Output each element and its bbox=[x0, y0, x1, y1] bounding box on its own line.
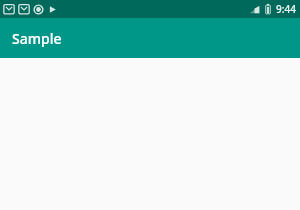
other: Recording notification bbox=[33, 4, 44, 15]
staticText: Sample bbox=[12, 29, 62, 48]
other: Cellular signal bbox=[249, 4, 260, 15]
button[interactable]: Sample bbox=[0, 18, 300, 58]
other: Unread mail notification bbox=[18, 3, 30, 15]
other: Media playing notification bbox=[47, 4, 58, 15]
other: Battery bbox=[264, 3, 272, 15]
other: Unread mail notification bbox=[3, 3, 15, 15]
staticText: 9:44 bbox=[276, 2, 296, 16]
